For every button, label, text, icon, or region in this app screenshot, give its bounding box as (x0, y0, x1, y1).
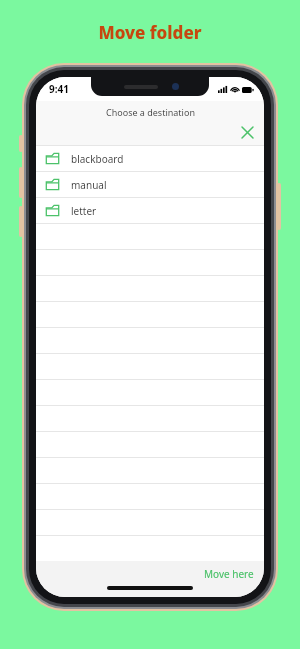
staticText: letter (71, 204, 97, 218)
button[interactable]: manual (36, 172, 264, 198)
button[interactable]: letter (36, 198, 264, 224)
staticText: Choose a destination (106, 106, 195, 118)
staticText: Move folder (98, 21, 202, 44)
button[interactable]: blackboard (36, 146, 264, 172)
button[interactable]: Move here (198, 563, 260, 585)
staticText: Move here (204, 567, 254, 581)
button[interactable]: Close (236, 121, 258, 143)
staticText: 9:41 (49, 82, 69, 96)
staticText: manual (71, 178, 107, 192)
staticText: blackboard (71, 152, 124, 166)
